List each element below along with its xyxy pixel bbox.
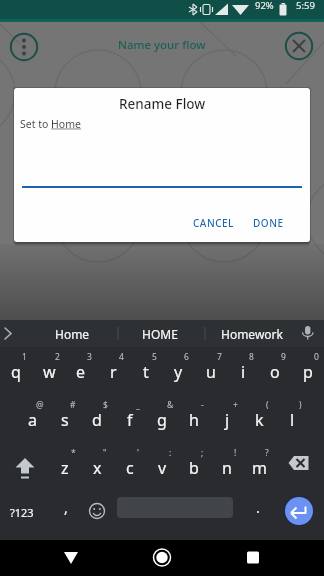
staticText: z xyxy=(61,457,69,479)
button[interactable]: HOME xyxy=(128,320,192,347)
staticText: d xyxy=(92,409,102,431)
staticText: j xyxy=(225,409,230,431)
staticText: 3 xyxy=(87,351,92,363)
staticText: Home xyxy=(55,326,90,342)
staticText: ! xyxy=(234,447,237,459)
button[interactable]: c xyxy=(114,445,146,491)
staticText: h xyxy=(189,409,199,431)
staticText: ) xyxy=(299,399,302,411)
staticText: 4 xyxy=(119,351,124,363)
staticText: v xyxy=(158,457,167,479)
button[interactable]: a xyxy=(16,397,48,443)
staticText: DONE xyxy=(253,216,284,230)
staticText: f xyxy=(127,409,133,431)
button[interactable]: z xyxy=(49,445,81,491)
staticText: g xyxy=(157,409,167,431)
staticText: e xyxy=(76,361,86,383)
button[interactable]: d xyxy=(81,397,113,443)
staticText: : xyxy=(169,447,172,459)
button[interactable]: t xyxy=(130,349,162,395)
staticText: & xyxy=(167,399,174,411)
staticText: k xyxy=(255,409,264,431)
staticText: 5 xyxy=(152,351,157,363)
staticText: x xyxy=(93,457,102,479)
button[interactable]: x xyxy=(81,445,113,491)
button[interactable]: l xyxy=(276,397,308,443)
staticText: " xyxy=(103,447,107,459)
staticText: $ xyxy=(103,399,108,411)
staticText: 9 xyxy=(281,351,286,363)
button[interactable] xyxy=(285,32,313,60)
staticText: q xyxy=(11,361,21,383)
button[interactable]: b xyxy=(178,445,210,491)
button[interactable]: m xyxy=(243,445,275,491)
staticText: ' xyxy=(137,447,139,459)
staticText: u xyxy=(206,361,216,383)
staticText: 2 xyxy=(55,351,60,363)
staticText: 92% xyxy=(255,0,274,12)
staticText: HOME xyxy=(142,326,178,342)
button[interactable]: e xyxy=(65,349,97,395)
staticText: ? xyxy=(265,447,269,459)
button[interactable]: u xyxy=(195,349,227,395)
button[interactable] xyxy=(10,33,38,61)
button[interactable]: k xyxy=(243,397,275,443)
staticText: b xyxy=(189,457,199,479)
button[interactable] xyxy=(6,443,44,491)
button[interactable]: s xyxy=(49,397,81,443)
staticText: Name your flow xyxy=(118,37,206,53)
staticText: CANCEL xyxy=(193,216,234,230)
button[interactable]: q xyxy=(0,349,32,395)
button[interactable]: Homework xyxy=(210,320,294,347)
staticText: 8 xyxy=(249,351,254,363)
button[interactable]: y xyxy=(162,349,194,395)
button[interactable]: j xyxy=(211,397,243,443)
button[interactable]: i xyxy=(227,349,259,395)
button[interactable]: h xyxy=(178,397,210,443)
staticText: ; xyxy=(201,447,204,459)
staticText: 6 xyxy=(184,351,189,363)
staticText: # xyxy=(70,399,76,411)
staticText: i xyxy=(241,361,246,383)
button[interactable] xyxy=(143,540,181,576)
button[interactable]: n xyxy=(211,445,243,491)
staticText: Rename Flow xyxy=(119,95,206,113)
staticText: _ xyxy=(136,399,140,411)
button[interactable]: v xyxy=(146,445,178,491)
button[interactable]: Home xyxy=(40,320,104,347)
staticText: Homework xyxy=(221,326,283,342)
button[interactable]: o xyxy=(259,349,291,395)
staticText: Set to Home xyxy=(20,117,81,131)
staticText: 1 xyxy=(22,351,27,363)
staticText: 7 xyxy=(217,351,222,363)
button[interactable]: DONE xyxy=(242,210,294,236)
button[interactable]: p xyxy=(292,349,324,395)
button[interactable]: w xyxy=(33,349,65,395)
button[interactable]: . xyxy=(242,484,274,530)
button[interactable] xyxy=(285,497,313,525)
button[interactable] xyxy=(52,540,90,576)
staticText: s xyxy=(61,409,69,431)
staticText: - xyxy=(201,399,204,411)
button[interactable]: g xyxy=(146,397,178,443)
button[interactable]: ?123 xyxy=(2,490,42,534)
button[interactable]: , xyxy=(50,484,82,530)
button[interactable] xyxy=(282,445,320,489)
staticText: m xyxy=(252,457,267,479)
staticText: y xyxy=(174,361,183,383)
staticText: + xyxy=(233,399,238,411)
staticText: p xyxy=(303,361,313,383)
staticText: 0 xyxy=(314,351,319,363)
button[interactable]: r xyxy=(97,349,129,395)
button[interactable] xyxy=(82,493,112,537)
button[interactable]: f xyxy=(114,397,146,443)
staticText: n xyxy=(222,457,232,479)
staticText: , xyxy=(64,498,68,517)
button[interactable] xyxy=(234,540,272,576)
button[interactable]: CANCEL xyxy=(182,210,244,236)
staticText: 5:59 xyxy=(296,0,315,12)
staticText: ?123 xyxy=(10,505,34,520)
staticText: . xyxy=(256,498,260,517)
staticText: o xyxy=(270,361,280,383)
